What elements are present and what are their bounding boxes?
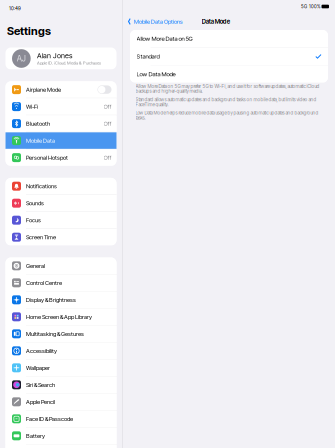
button[interactable]: Siri & Search [5, 376, 116, 393]
staticText: Bluetooth [26, 120, 50, 127]
staticText: 10:49 [9, 6, 21, 11]
staticText: Home Screen & App Library [26, 313, 92, 320]
staticText: Allow More Data on 5G may prefer 5G to W… [135, 83, 319, 94]
button[interactable]: Sounds [5, 195, 116, 211]
staticText: Personal Hotspot [26, 154, 68, 161]
staticText: Multitasking & Gestures [26, 330, 84, 337]
staticText: Mobile Data Options [134, 18, 183, 25]
button[interactable]: Allow More Data on 5G [130, 30, 328, 47]
staticText: Standard allows automatic updates and ba… [135, 97, 316, 107]
staticText: Focus [26, 217, 41, 223]
staticText: Sounds [26, 200, 44, 206]
button[interactable]: Battery [5, 427, 116, 444]
staticText: Data Mode [202, 18, 230, 25]
staticText: Low Data Mode helps reduce mobile data u… [135, 110, 318, 120]
button[interactable]: Mobile Data [5, 132, 116, 149]
staticText: Accessibility [26, 347, 57, 354]
button[interactable]: Standard [130, 48, 328, 65]
button[interactable]: Apple Pencil [5, 393, 116, 410]
staticText: Display & Brightness [26, 296, 76, 303]
staticText: Battery [26, 432, 45, 439]
button[interactable]: Notifications [5, 178, 116, 194]
staticText: 5G 100% [301, 4, 320, 9]
staticText: Standard [136, 53, 159, 60]
button[interactable]: Wallpaper [5, 359, 116, 376]
staticText: Face ID & Passcode [26, 415, 73, 422]
button[interactable]: Focus [5, 212, 116, 228]
staticText: Off [103, 103, 111, 110]
staticText: Low Data Mode [136, 71, 175, 77]
staticText: Control Centre [26, 279, 62, 286]
staticText: Off [103, 120, 111, 127]
staticText: Siri & Search [26, 381, 55, 388]
button[interactable]: Screen Time [5, 229, 116, 245]
staticText: Off [103, 154, 111, 161]
button[interactable]: Airplane Mode [5, 81, 116, 98]
button[interactable]: Multitasking & Gestures [5, 325, 116, 342]
staticText: Screen Time [26, 234, 56, 240]
button[interactable]: Mobile Data Options [123, 14, 186, 29]
staticText: General [26, 262, 45, 269]
staticText: Mobile Data [26, 137, 55, 144]
button[interactable]: Home Screen & App Library [5, 308, 116, 325]
staticText: Wi-Fi [26, 103, 38, 110]
button[interactable]: Low Data Mode [130, 65, 328, 83]
button[interactable]: Face ID & Passcode [5, 410, 116, 427]
staticText: Settings [7, 25, 51, 37]
staticText: AJ [17, 54, 26, 63]
button[interactable]: Bluetooth [5, 115, 116, 132]
staticText: Allow More Data on 5G [136, 35, 192, 42]
button[interactable]: AJ [0, 47, 122, 69]
button[interactable]: Display & Brightness [5, 291, 116, 308]
staticText: Apple Pencil [26, 398, 55, 405]
button[interactable]: Personal Hotspot [5, 149, 116, 166]
button[interactable]: Control Centre [5, 274, 116, 291]
staticText: Wallpaper [26, 364, 50, 371]
staticText: Alan Jones [37, 52, 72, 60]
staticText: Airplane Mode [26, 86, 61, 93]
button[interactable]: Wi-Fi [5, 98, 116, 115]
staticText: Notifications [26, 183, 57, 189]
staticText: Apple ID, iCloud, Media & Purchases [37, 60, 101, 65]
button[interactable]: Accessibility [5, 342, 116, 359]
button[interactable]: General [5, 257, 116, 274]
